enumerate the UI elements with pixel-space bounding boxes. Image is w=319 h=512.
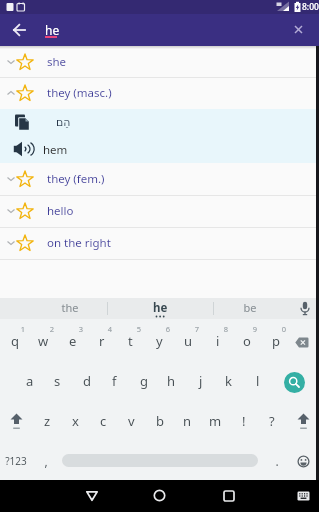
button[interactable] — [223, 490, 235, 502]
staticText: 5 — [130, 324, 148, 334]
staticText: they (fem.) — [47, 171, 105, 187]
staticText: h — [167, 372, 176, 390]
staticText: v — [128, 412, 135, 430]
button[interactable]: hello — [0, 195, 319, 227]
button[interactable]: he — [107, 298, 213, 317]
staticText: x — [72, 412, 79, 430]
button[interactable]: hem — [0, 136, 319, 163]
button[interactable]: m — [201, 402, 230, 440]
button[interactable]: q — [0, 325, 29, 357]
button[interactable] — [297, 491, 310, 501]
button[interactable]: p — [261, 325, 290, 357]
button[interactable]: l — [243, 362, 272, 400]
button[interactable] — [299, 301, 311, 317]
staticText: 9 — [246, 324, 264, 334]
button[interactable]: n — [173, 402, 202, 440]
button[interactable]: w — [29, 325, 58, 357]
button[interactable]: u — [174, 325, 203, 357]
button[interactable]: t — [116, 325, 145, 357]
staticText: n — [183, 412, 192, 430]
staticText: . — [271, 453, 283, 469]
button[interactable]: on the right — [0, 227, 319, 259]
staticText: l — [256, 372, 260, 390]
staticText: הֵם — [56, 116, 71, 129]
staticText: they (masc.) — [47, 85, 112, 101]
button[interactable]: z — [33, 402, 62, 440]
button[interactable]: v — [117, 402, 146, 440]
staticText: on the right — [47, 235, 111, 251]
staticText: 8:00 — [302, 1, 319, 13]
button[interactable]: ? — [257, 402, 286, 440]
button[interactable]: a — [15, 362, 44, 400]
button[interactable]: o — [232, 325, 261, 357]
button[interactable]: they (fem.) — [0, 162, 319, 195]
staticText: be — [200, 300, 300, 315]
staticText: f — [112, 372, 117, 390]
staticText: g — [140, 372, 148, 390]
button[interactable]: i — [203, 325, 232, 357]
staticText: 1 — [14, 324, 32, 334]
staticText: d — [83, 372, 91, 390]
button[interactable] — [85, 490, 99, 502]
button[interactable]: she — [0, 46, 319, 77]
staticText: 0 — [275, 324, 293, 334]
staticText: she — [47, 54, 67, 70]
button[interactable] — [10, 413, 23, 430]
staticText: y — [156, 332, 163, 350]
staticText: c — [100, 412, 107, 430]
button[interactable]: c — [89, 402, 118, 440]
button[interactable]: d — [72, 362, 101, 400]
staticText: r — [99, 332, 105, 350]
button[interactable]: f — [100, 362, 129, 400]
staticText: z — [44, 412, 51, 430]
staticText: ! — [242, 412, 246, 430]
button[interactable]: b — [145, 402, 174, 440]
button[interactable]: x — [61, 402, 90, 440]
button[interactable] — [294, 25, 303, 34]
staticText: 7 — [188, 324, 206, 334]
button[interactable]: s — [43, 362, 72, 400]
staticText: ?123 — [2, 454, 30, 468]
button[interactable]: y — [145, 325, 174, 357]
button[interactable]: r — [87, 325, 116, 357]
staticText: m — [209, 412, 222, 430]
button[interactable] — [297, 413, 310, 430]
staticText: hello — [47, 203, 74, 219]
staticText: ? — [269, 412, 275, 430]
button[interactable]: הֵם — [0, 109, 319, 136]
button[interactable]: h — [157, 362, 186, 400]
staticText: i — [216, 332, 220, 350]
button[interactable] — [295, 337, 309, 348]
button[interactable] — [297, 455, 310, 468]
button[interactable]: k — [214, 362, 243, 400]
staticText: j — [199, 372, 203, 390]
staticText: , — [40, 453, 52, 469]
staticText: w — [38, 332, 49, 350]
button[interactable]: e — [58, 325, 87, 357]
staticText: o — [243, 332, 251, 350]
staticText: s — [54, 372, 61, 390]
button[interactable]: they (masc.) — [0, 77, 319, 109]
staticText: 6 — [159, 324, 177, 334]
button[interactable] — [13, 24, 26, 36]
staticText: 3 — [72, 324, 90, 334]
staticText: 4 — [101, 324, 119, 334]
staticText: k — [225, 372, 232, 390]
staticText: b — [156, 412, 164, 430]
button[interactable] — [284, 372, 305, 393]
button[interactable]: ! — [229, 402, 258, 440]
staticText: the — [20, 300, 120, 315]
staticText: u — [184, 332, 193, 350]
staticText: 2 — [43, 324, 61, 334]
button[interactable]: g — [129, 362, 158, 400]
staticText: hem — [43, 142, 68, 158]
staticText: t — [128, 332, 133, 350]
staticText: p — [272, 332, 280, 350]
button[interactable] — [153, 489, 166, 502]
button[interactable]: j — [186, 362, 215, 400]
staticText: e — [69, 332, 77, 350]
staticText: he — [45, 22, 60, 38]
staticText: a — [26, 372, 34, 390]
staticText: q — [11, 332, 19, 350]
